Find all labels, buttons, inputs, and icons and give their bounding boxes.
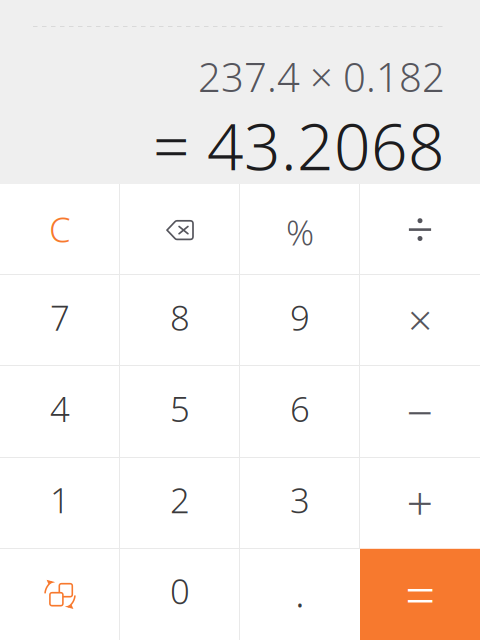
button[interactable]: [360, 366, 480, 458]
button[interactable]: [360, 458, 480, 549]
button[interactable]: Unit converter: [0, 549, 120, 640]
button[interactable]: [0, 366, 120, 458]
staticText: =: [405, 558, 435, 629]
staticText: 1: [50, 477, 70, 523]
staticText: 0: [170, 568, 190, 614]
staticText: 7: [50, 294, 70, 340]
button[interactable]: [120, 549, 240, 640]
button[interactable]: [240, 366, 360, 458]
button[interactable]: Divide: [360, 184, 480, 275]
staticText: = 43.2068: [153, 103, 445, 188]
button[interactable]: [0, 458, 120, 549]
button[interactable]: [120, 275, 240, 366]
staticText: 3: [290, 477, 310, 523]
staticText: 9: [290, 294, 310, 340]
staticText: 2: [170, 477, 190, 523]
staticText: .: [295, 565, 305, 618]
staticText: 8: [170, 294, 190, 340]
staticText: +: [406, 471, 433, 533]
button[interactable]: [120, 458, 240, 549]
staticText: 5: [170, 385, 190, 431]
button[interactable]: [360, 275, 480, 366]
button[interactable]: [0, 184, 120, 275]
button[interactable]: [360, 549, 480, 640]
button[interactable]: [0, 275, 120, 366]
staticText: 237.4 × 0.182: [198, 50, 445, 103]
staticText: 6: [290, 385, 310, 431]
button[interactable]: [240, 184, 360, 275]
staticText: ×: [408, 291, 432, 348]
button[interactable]: Backspace: [120, 184, 240, 275]
button[interactable]: [240, 458, 360, 549]
button[interactable]: [240, 549, 360, 640]
staticText: C: [49, 206, 71, 252]
staticText: −: [406, 380, 433, 442]
staticText: %: [286, 209, 314, 255]
button[interactable]: [120, 366, 240, 458]
staticText: 4: [50, 385, 70, 431]
button[interactable]: [240, 275, 360, 366]
